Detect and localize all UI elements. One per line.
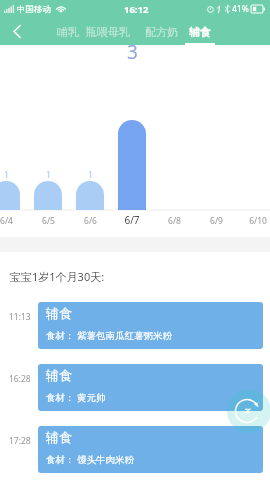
staticText: 6/7 bbox=[124, 213, 140, 227]
button[interactable]: 辅食 bbox=[178, 18, 222, 45]
staticText: 辅食 bbox=[46, 305, 72, 321]
staticText: 中国移动 bbox=[17, 4, 51, 15]
staticText: 16:12 bbox=[124, 3, 149, 16]
button[interactable]: 16:28 bbox=[0, 364, 270, 411]
staticText: 6/6 bbox=[84, 215, 97, 227]
button[interactable]: 瓶喂母乳 bbox=[86, 18, 130, 45]
button[interactable]: Sleep timer bbox=[227, 389, 270, 433]
staticText: 瓶喂母乳 bbox=[86, 25, 130, 39]
staticText: 41% bbox=[232, 3, 249, 15]
staticText: 3 bbox=[127, 39, 138, 65]
staticText: 配方奶 bbox=[145, 25, 178, 39]
staticText: 1 bbox=[46, 169, 51, 180]
staticText: 6/9 bbox=[210, 215, 223, 227]
button[interactable]: Back bbox=[0, 18, 34, 45]
staticText: 6/5 bbox=[42, 215, 55, 227]
staticText: 6/8 bbox=[168, 215, 181, 227]
staticText: 6/10 bbox=[249, 215, 267, 227]
staticText: 17:28 bbox=[9, 435, 38, 447]
button[interactable]: 哺乳 bbox=[46, 18, 90, 45]
staticText: 食材： 馒头牛肉米粉 bbox=[46, 453, 134, 466]
staticText: 1 bbox=[4, 169, 9, 180]
button[interactable]: 11:13 bbox=[0, 302, 270, 349]
staticText: 辅食 bbox=[46, 367, 72, 383]
button[interactable]: 配方奶 bbox=[139, 18, 183, 45]
staticText: 辅食 bbox=[189, 25, 211, 39]
staticText: 16:28 bbox=[9, 373, 38, 385]
staticText: 宝宝1岁1个月30天: bbox=[10, 269, 105, 284]
staticText: 食材： 紫薯包南瓜红薯粥米粉 bbox=[46, 329, 172, 342]
staticText: 食材： 黄元帅 bbox=[46, 391, 106, 404]
staticText: 哺乳 bbox=[57, 25, 79, 39]
staticText: 6/4 bbox=[0, 215, 13, 227]
button[interactable]: 17:28 bbox=[0, 426, 270, 473]
staticText: 辅食 bbox=[46, 429, 72, 445]
staticText: 11:13 bbox=[9, 311, 38, 323]
staticText: 1 bbox=[88, 169, 93, 180]
